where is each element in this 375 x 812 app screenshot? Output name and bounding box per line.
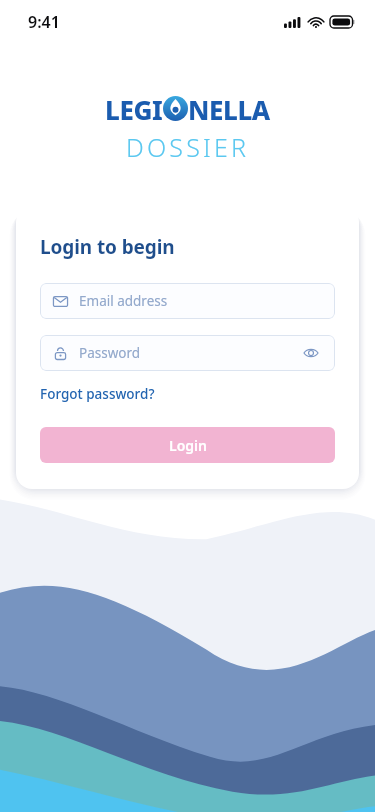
button[interactable]: Login [40,427,335,463]
button[interactable]: Email address [40,283,335,319]
staticText: Email address [79,292,168,310]
button[interactable]: Show password [300,342,322,364]
staticText: NELLA [188,92,270,127]
staticText: Forgot password? [40,385,155,403]
staticText: DOSSIER [126,130,250,164]
staticText: Password [79,344,141,362]
staticText: Login to begin [40,234,175,260]
button[interactable]: Password [40,335,335,371]
staticText: LEGI [105,92,163,127]
staticText: Login [169,436,207,455]
staticText: 9:41 [28,11,60,33]
button[interactable]: Forgot password? [40,383,155,405]
